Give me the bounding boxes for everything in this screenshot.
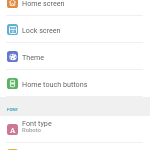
button[interactable]: Home screen [0, 0, 150, 16]
button[interactable]: A [0, 116, 150, 143]
staticText: Roboto [22, 127, 41, 134]
staticText: A [10, 125, 16, 135]
button[interactable]: A [0, 143, 150, 150]
button[interactable]: Lock screen [0, 16, 150, 43]
staticText: Home touch buttons [22, 80, 88, 88]
button[interactable]: Home touch buttons [0, 70, 150, 97]
button[interactable]: Theme [0, 43, 150, 70]
staticText: FONT [7, 107, 19, 112]
staticText: Lock screen [22, 26, 61, 34]
staticText: Font type [22, 119, 52, 127]
staticText: Home screen [22, 0, 65, 7]
staticText: Theme [22, 53, 45, 61]
